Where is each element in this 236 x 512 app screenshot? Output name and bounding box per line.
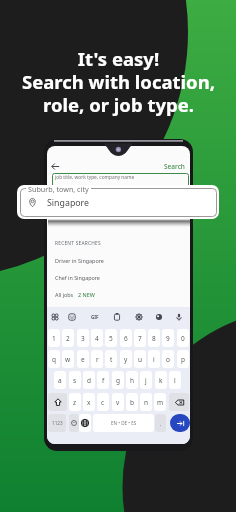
button[interactable]: j <box>140 371 152 389</box>
staticText: Search <box>164 162 185 171</box>
button[interactable]: r <box>91 350 103 368</box>
button[interactable]: Enter <box>170 414 190 432</box>
staticText: j <box>145 376 147 385</box>
button[interactable]: f <box>97 371 109 389</box>
staticText: o <box>166 355 170 364</box>
button[interactable]: a <box>54 371 66 389</box>
button[interactable]: 4 <box>91 329 103 347</box>
button[interactable]: 8 <box>148 329 160 347</box>
button[interactable]: p <box>177 350 189 368</box>
button[interactable]: Themes <box>153 311 165 323</box>
staticText: p <box>181 355 185 364</box>
button[interactable]: 0 <box>177 329 189 347</box>
button[interactable]: EN • DE • ES <box>93 414 154 432</box>
button[interactable]: 5 <box>105 329 117 347</box>
staticText: Singapore <box>47 197 90 209</box>
staticText: e <box>81 355 85 364</box>
button[interactable]: Chef in Singapore <box>47 271 190 285</box>
staticText: job title, work type, company name <box>55 174 135 181</box>
button[interactable]: h <box>126 371 138 389</box>
staticText: k <box>159 376 163 385</box>
staticText: 9 <box>166 334 170 343</box>
button[interactable]: 6 <box>120 329 132 347</box>
button[interactable]: m <box>154 393 166 411</box>
staticText: l <box>174 376 176 385</box>
staticText: z <box>73 398 77 407</box>
button[interactable]: 1 <box>48 329 60 347</box>
staticText: All jobs <box>55 291 74 298</box>
button[interactable]: Stickers <box>66 311 78 323</box>
staticText: 3 <box>81 334 85 343</box>
button[interactable]: 2 <box>62 329 74 347</box>
staticText: i <box>153 355 155 364</box>
button[interactable]: 9 <box>162 329 174 347</box>
button[interactable]: GIF <box>89 311 101 323</box>
button[interactable]: l <box>169 371 181 389</box>
staticText: Suburb, town, city <box>28 185 89 194</box>
button[interactable]: c <box>97 393 109 411</box>
staticText: a <box>58 376 62 385</box>
staticText: c <box>101 398 105 407</box>
button[interactable]: z <box>69 393 81 411</box>
button[interactable]: x <box>83 393 95 411</box>
button[interactable]: Apps <box>49 311 61 323</box>
button[interactable]: Voice input <box>173 311 185 323</box>
button[interactable]: Back <box>49 160 61 172</box>
button[interactable]: y <box>120 350 132 368</box>
staticText: 6 <box>124 334 128 343</box>
staticText: w <box>65 355 71 364</box>
button[interactable]: Shift <box>48 393 67 411</box>
button[interactable]: Driver in Singapore <box>47 254 190 268</box>
button[interactable]: Search <box>164 161 185 171</box>
staticText: g <box>116 376 120 385</box>
staticText: q <box>52 355 56 364</box>
staticText: h <box>130 376 135 385</box>
button[interactable]: Switch language <box>79 414 91 432</box>
button[interactable]: q <box>48 350 60 368</box>
button[interactable]: 1123 <box>48 414 66 432</box>
button[interactable]: g <box>112 371 124 389</box>
button[interactable]: e <box>77 350 89 368</box>
button[interactable]: 7 <box>134 329 146 347</box>
button[interactable]: Backspace <box>169 393 189 411</box>
staticText: f <box>102 376 105 385</box>
staticText: d <box>87 376 91 385</box>
staticText: r <box>96 355 99 364</box>
button[interactable]: Settings <box>133 311 145 323</box>
staticText: 1 <box>52 334 56 343</box>
staticText: 8 <box>152 334 156 343</box>
button[interactable]: Emoji <box>69 414 79 432</box>
button[interactable]: Clipboard <box>111 311 123 323</box>
staticText: . <box>160 420 162 427</box>
button[interactable]: u <box>134 350 146 368</box>
button[interactable]: v <box>112 393 124 411</box>
staticText: n <box>144 398 149 407</box>
staticText: 4 <box>95 334 99 343</box>
button[interactable]: n <box>140 393 152 411</box>
staticText: It's easy! Search with location, role, o… <box>22 46 215 118</box>
staticText: EN • DE • ES <box>111 420 137 426</box>
staticText: x <box>87 398 91 407</box>
button[interactable]: s <box>69 371 81 389</box>
button[interactable]: 3 <box>77 329 89 347</box>
staticText: u <box>138 355 143 364</box>
button[interactable]: k <box>155 371 167 389</box>
button[interactable]: w <box>62 350 74 368</box>
staticText: Chef in Singapore <box>55 274 100 281</box>
staticText: Driver in Singapore <box>55 257 104 264</box>
staticText: 0 <box>181 334 185 343</box>
staticText: m <box>157 398 164 407</box>
button[interactable] <box>52 196 189 218</box>
button[interactable]: All jobs <box>47 288 190 302</box>
button[interactable]: d <box>83 371 95 389</box>
button[interactable]: o <box>162 350 174 368</box>
button[interactable]: b <box>126 393 138 411</box>
staticText: 5 <box>109 334 113 343</box>
staticText: GIF <box>91 314 99 320</box>
button[interactable]: t <box>105 350 117 368</box>
button[interactable]: job title, work type, company name <box>52 173 189 192</box>
button[interactable]: i <box>148 350 160 368</box>
button[interactable]: . <box>155 414 166 432</box>
button[interactable]: Singapore <box>20 188 217 217</box>
staticText: 7 <box>138 334 142 343</box>
